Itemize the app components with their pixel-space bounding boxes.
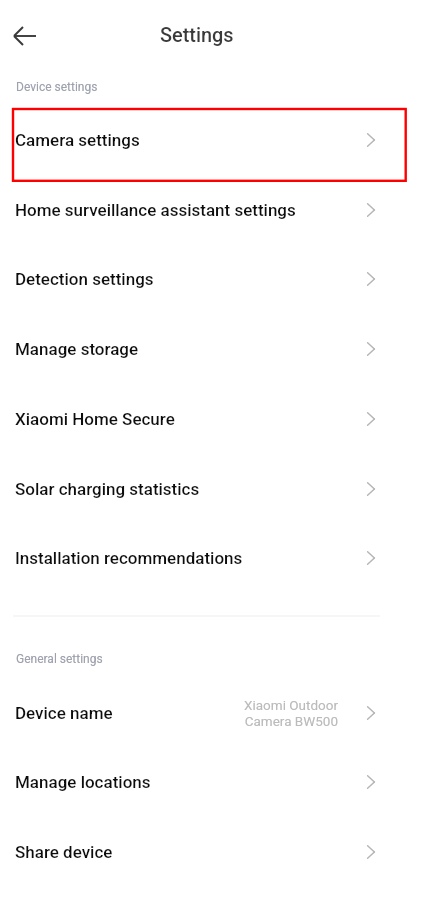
button[interactable]: Manage storage bbox=[0, 314, 423, 384]
staticText: Installation recommendations bbox=[15, 548, 243, 568]
button[interactable]: Back bbox=[5, 16, 45, 56]
button[interactable]: Device name bbox=[0, 678, 423, 748]
staticText: Share device bbox=[15, 842, 113, 862]
staticText: Manage locations bbox=[15, 772, 151, 792]
staticText: Device name bbox=[15, 703, 113, 723]
staticText: Xiaomi Home Secure bbox=[15, 409, 175, 429]
staticText: Detection settings bbox=[15, 269, 154, 289]
button[interactable]: Home surveillance assistant settings bbox=[0, 175, 423, 245]
button[interactable]: Solar charging statistics bbox=[0, 454, 423, 524]
button[interactable]: Installation recommendations bbox=[0, 523, 423, 593]
button[interactable]: Detection settings bbox=[0, 244, 423, 314]
button[interactable]: Camera settings bbox=[0, 105, 423, 175]
staticText: Camera settings bbox=[15, 130, 140, 150]
staticText: Xiaomi Outdoor Camera BW500 bbox=[218, 697, 338, 729]
button[interactable]: Manage locations bbox=[0, 747, 423, 817]
staticText: General settings bbox=[16, 652, 103, 666]
staticText: Home surveillance assistant settings bbox=[15, 200, 296, 220]
button[interactable]: Share device bbox=[0, 817, 423, 887]
button[interactable]: Xiaomi Home Secure bbox=[0, 384, 423, 454]
staticText: Solar charging statistics bbox=[15, 479, 200, 499]
staticText: Settings bbox=[160, 24, 234, 47]
staticText: Manage storage bbox=[15, 339, 139, 359]
staticText: Device settings bbox=[16, 80, 98, 94]
